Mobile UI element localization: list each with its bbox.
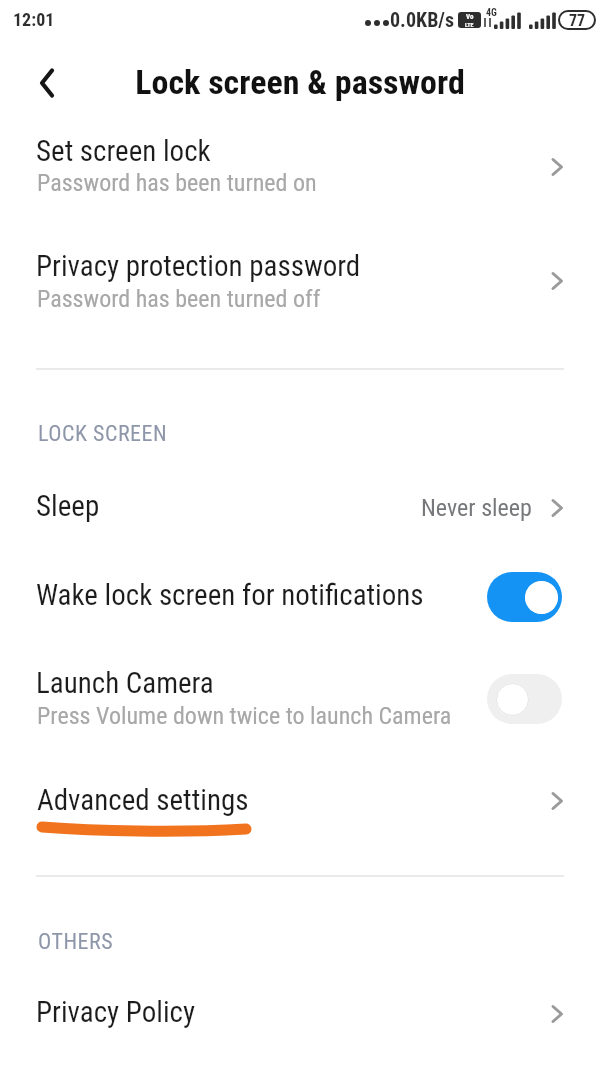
- staticText: Launch Camera: [36, 666, 214, 700]
- staticText: OTHERS: [38, 929, 114, 955]
- staticText: Wake lock screen for notifications: [36, 578, 424, 612]
- staticText: 12:01: [13, 9, 55, 30]
- button[interactable]: [26, 62, 68, 104]
- staticText: Advanced settings: [37, 783, 249, 817]
- button[interactable]: Privacy protection password: [0, 235, 600, 335]
- staticText: 4G: [486, 7, 497, 19]
- staticText: Lock screen & password: [0, 62, 600, 102]
- staticText: Password has been turned on: [37, 169, 317, 197]
- staticText: Press Volume down twice to launch Camera: [37, 702, 452, 730]
- staticText: LOCK SCREEN: [38, 421, 168, 447]
- staticText: Set screen lock: [36, 134, 211, 168]
- button[interactable]: Privacy Policy: [0, 975, 600, 1055]
- staticText: Never sleep: [421, 494, 532, 522]
- staticText: 0.0KB/s: [390, 8, 455, 31]
- staticText: Sleep: [36, 489, 100, 523]
- button[interactable]: Set screen lock: [0, 120, 600, 220]
- staticText: LTE: [465, 21, 474, 28]
- staticText: Password has been turned off: [37, 285, 321, 313]
- button[interactable]: Wake lock screen for notifications: [0, 558, 600, 636]
- staticText: Vo: [466, 13, 474, 21]
- button[interactable]: Sleep: [0, 470, 600, 546]
- button[interactable]: Launch Camera: [0, 648, 600, 746]
- button[interactable]: Advanced settings: [0, 760, 600, 846]
- staticText: Privacy protection password: [36, 249, 361, 283]
- staticText: 77: [569, 11, 586, 30]
- staticText: Privacy Policy: [36, 995, 196, 1029]
